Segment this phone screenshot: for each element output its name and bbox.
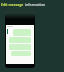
staticText: information bbox=[25, 2, 46, 7]
staticText: Edit message bbox=[1, 2, 24, 7]
